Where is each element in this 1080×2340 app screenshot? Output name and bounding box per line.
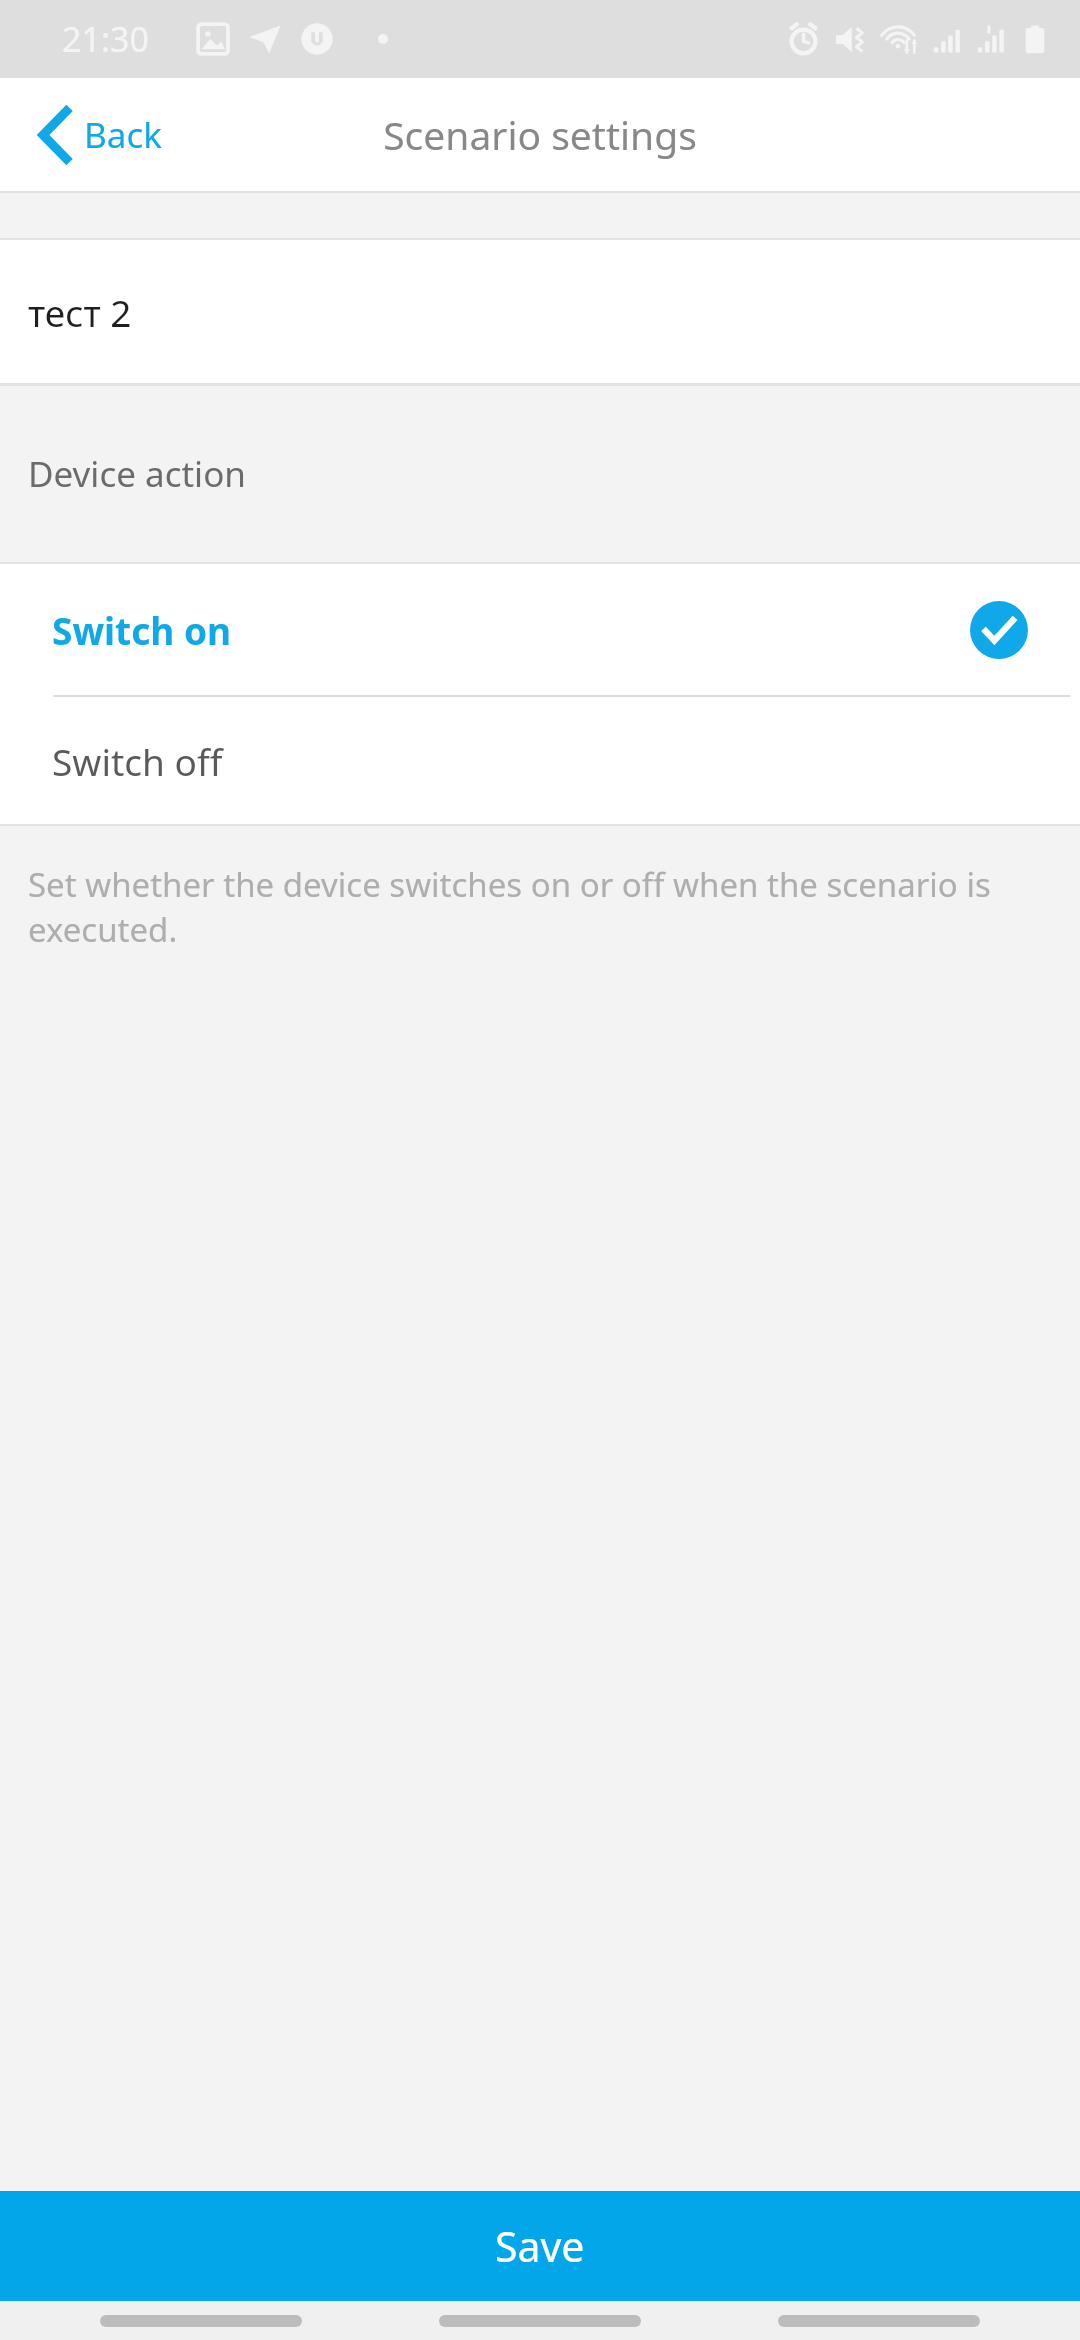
staticText: 21:30 xyxy=(62,16,149,62)
staticText: Set whether the device switches on or of… xyxy=(28,862,1010,952)
button[interactable]: Switch off xyxy=(0,697,1080,824)
button[interactable]: Navigation xyxy=(778,2315,980,2327)
staticText: тест 2 xyxy=(28,287,132,337)
staticText: Save xyxy=(495,2218,585,2274)
staticText: Switch on xyxy=(52,605,232,655)
button[interactable]: Navigation xyxy=(439,2315,641,2327)
staticText: Switch off xyxy=(52,736,223,786)
other: Selected xyxy=(970,601,1028,659)
button[interactable]: Switch on xyxy=(0,564,1080,695)
staticText: Device action xyxy=(28,450,246,498)
staticText: Scenario settings xyxy=(383,108,697,161)
button[interactable]: Navigation xyxy=(100,2315,302,2327)
button[interactable]: Back xyxy=(0,78,186,191)
button[interactable]: тест 2 xyxy=(0,240,1080,383)
staticText: Back xyxy=(84,111,162,159)
button[interactable]: Save xyxy=(0,2191,1080,2301)
